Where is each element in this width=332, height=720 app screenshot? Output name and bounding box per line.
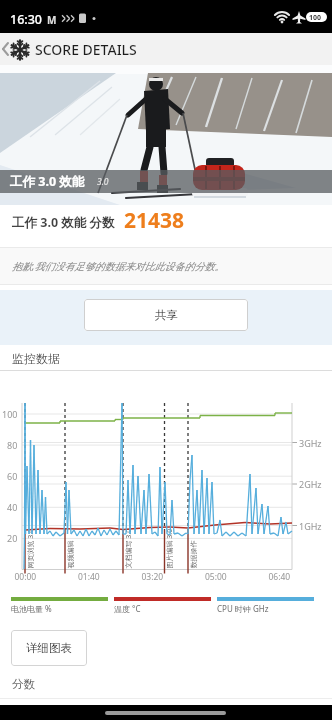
staticText: 21438 — [124, 206, 185, 235]
staticText: 监控数据 — [12, 351, 60, 366]
button[interactable]: 详细图表 — [11, 630, 87, 666]
staticText: 分数 — [12, 677, 35, 691]
staticText: 100 — [309, 13, 322, 23]
staticText: 3.0 — [97, 176, 109, 188]
staticText: 工作 3.0 效能 分数 — [12, 214, 115, 231]
staticText: 详细图表 — [26, 641, 72, 655]
button[interactable]: 共享 — [84, 299, 248, 331]
staticText: SCORE DETAILS — [35, 40, 137, 59]
button[interactable] — [0, 705, 332, 720]
staticText: M — [47, 13, 57, 27]
staticText: 工作 3.0 效能 — [10, 173, 85, 190]
staticText: 共享 — [155, 308, 178, 322]
staticText: 16:30 — [10, 11, 43, 28]
button[interactable]: SCORE DETAILS — [0, 33, 332, 65]
staticText: 抱歉,我们没有足够的数据来对比此设备的分数。 — [12, 259, 225, 273]
